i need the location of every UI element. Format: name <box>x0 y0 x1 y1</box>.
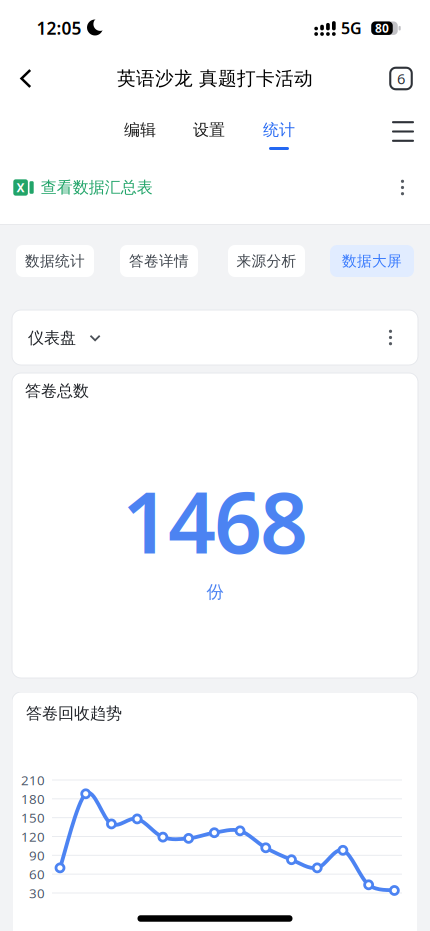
staticText: 30 <box>29 884 45 902</box>
staticText: 5G <box>341 17 362 39</box>
staticText: 份 <box>206 581 223 603</box>
staticText: 设置 <box>193 120 225 140</box>
button[interactable]: 仪表盘 <box>28 328 101 348</box>
button[interactable]: 返回 <box>14 63 38 94</box>
staticText: 6 <box>397 69 405 88</box>
staticText: 90 <box>29 846 45 864</box>
staticText: 答卷详情 <box>129 252 189 270</box>
staticText: 英语沙龙 真题打卡活动 <box>117 67 313 90</box>
button[interactable]: 设置 <box>193 120 225 140</box>
staticText: 150 <box>21 809 45 826</box>
staticText: 查看数据汇总表 <box>41 178 153 197</box>
staticText: 12:05 <box>36 16 81 39</box>
button[interactable]: 来源分析 <box>228 245 305 277</box>
staticText: 仪表盘 <box>28 328 76 348</box>
staticText: 编辑 <box>124 120 156 140</box>
button[interactable]: 数据大屏 <box>330 245 414 277</box>
staticText: 80 <box>375 20 389 36</box>
staticText: 数据统计 <box>25 252 85 270</box>
staticText: 120 <box>21 828 45 845</box>
button[interactable]: 编辑 <box>124 120 156 140</box>
staticText: 统计 <box>263 120 295 140</box>
staticText: 1468 <box>122 465 308 577</box>
staticText: 答卷回收趋势 <box>26 704 122 723</box>
staticText: 来源分析 <box>236 252 296 270</box>
button[interactable]: 菜单 <box>388 117 418 146</box>
staticText: 60 <box>29 865 45 883</box>
staticText: 数据大屏 <box>342 252 402 270</box>
staticText: 180 <box>21 790 45 808</box>
button[interactable]: X <box>13 178 153 197</box>
staticText: 210 <box>21 771 45 789</box>
button[interactable]: 数据统计 <box>16 245 94 277</box>
button[interactable]: 更多 <box>382 329 398 346</box>
button[interactable]: 更多 <box>394 179 410 196</box>
staticText: 答卷总数 <box>25 381 89 401</box>
button[interactable]: 多窗口 <box>389 67 412 90</box>
staticText: X <box>17 179 25 195</box>
button[interactable]: 统计 <box>263 120 295 140</box>
button[interactable]: 答卷详情 <box>120 245 198 277</box>
